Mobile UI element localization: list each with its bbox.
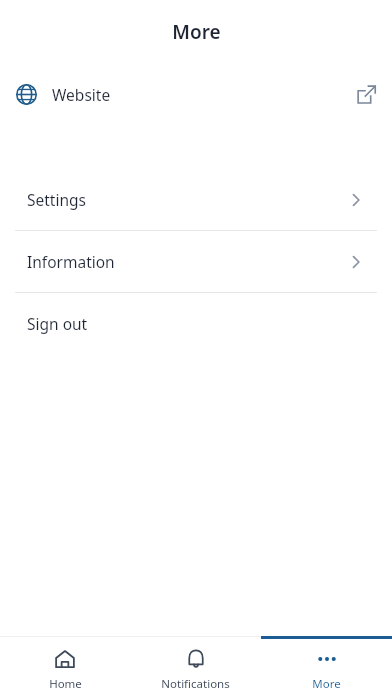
staticText: Home	[49, 676, 82, 692]
button[interactable]: Website	[0, 64, 392, 124]
staticText: More	[172, 19, 221, 45]
staticText: Settings	[27, 189, 86, 210]
button[interactable]: Information	[0, 231, 392, 292]
button[interactable]: Settings	[0, 169, 392, 230]
button[interactable]: Home	[0, 636, 130, 696]
staticText: Website	[52, 84, 111, 105]
staticText: Sign out	[27, 313, 88, 334]
button[interactable]: More	[261, 636, 392, 696]
staticText: More	[312, 676, 341, 692]
staticText: Information	[27, 251, 115, 272]
button[interactable]: Notifications	[130, 636, 261, 696]
button[interactable]: Sign out	[0, 293, 392, 354]
staticText: Notifications	[161, 676, 230, 692]
